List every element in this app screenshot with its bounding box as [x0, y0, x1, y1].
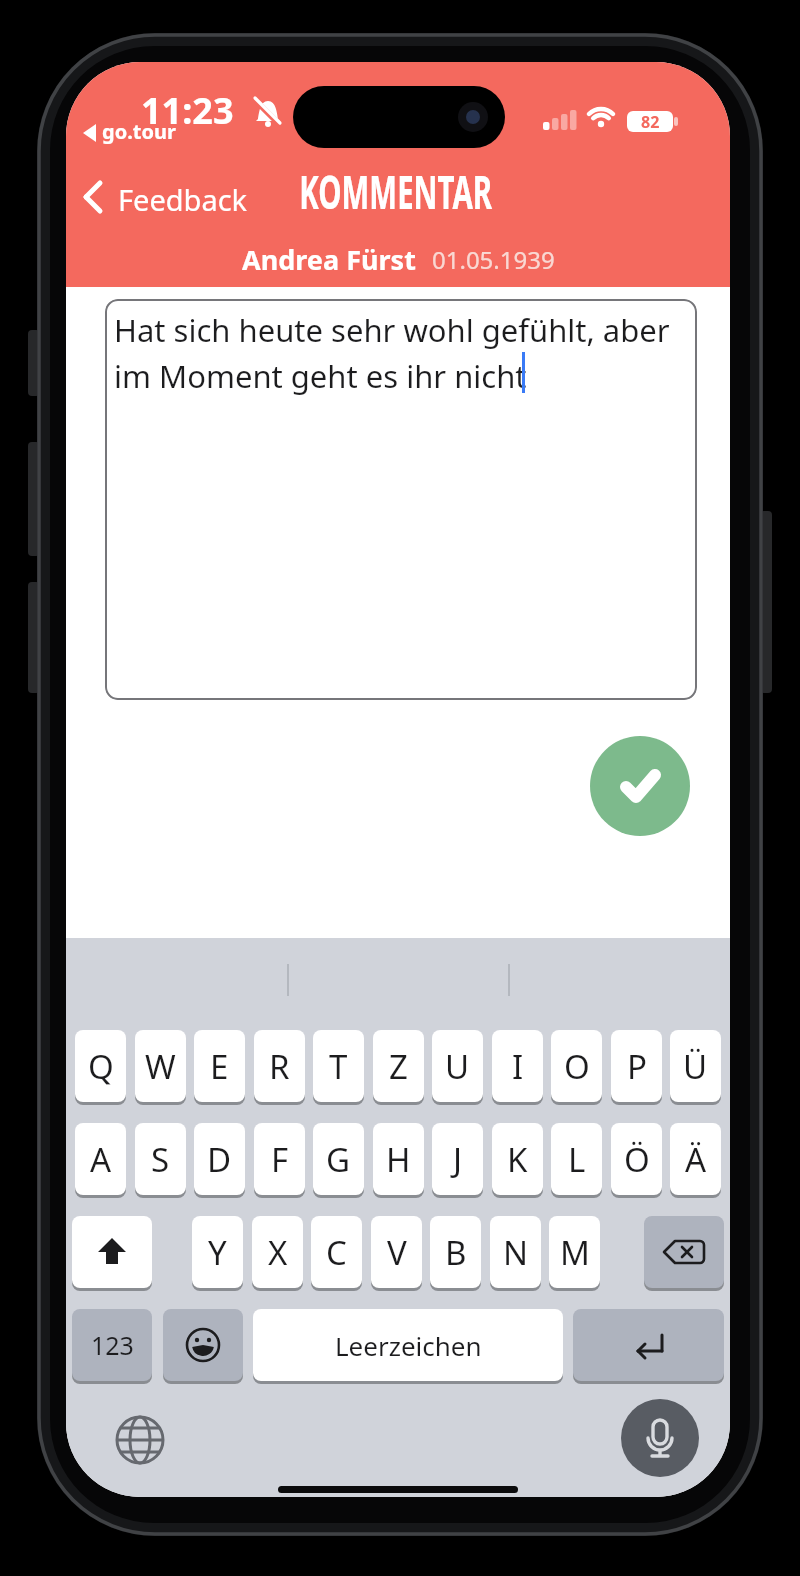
button[interactable]: R [254, 1030, 305, 1102]
staticText: H [386, 1137, 411, 1182]
button[interactable]: G [313, 1123, 364, 1195]
button[interactable] [76, 172, 256, 222]
staticText: C [326, 1230, 347, 1275]
staticText: V [387, 1230, 407, 1275]
button[interactable]: A [75, 1123, 126, 1195]
staticText: Z [389, 1044, 408, 1089]
button[interactable]: 123 [72, 1309, 152, 1381]
staticText: B [445, 1230, 467, 1275]
button[interactable]: Ü [670, 1030, 721, 1102]
staticText: M [560, 1230, 590, 1275]
button[interactable] [621, 1399, 699, 1477]
staticText: I [512, 1044, 524, 1089]
staticText: A [90, 1137, 112, 1182]
staticText: T [329, 1044, 348, 1089]
staticText: J [453, 1137, 463, 1182]
button[interactable] [72, 1216, 152, 1288]
staticText: F [271, 1137, 289, 1182]
staticText: Ü [683, 1044, 708, 1089]
staticText: Andrea Fürst [242, 241, 416, 278]
staticText: L [568, 1137, 586, 1182]
staticText: 82 [641, 111, 660, 132]
button[interactable]: B [430, 1216, 481, 1288]
button[interactable] [573, 1309, 724, 1381]
button[interactable]: Hat sich heute sehr wohl gefühlt, aber i… [105, 299, 697, 700]
staticText: 01.05.1939 [432, 243, 555, 276]
button[interactable]: H [373, 1123, 424, 1195]
button[interactable]: L [551, 1123, 602, 1195]
button[interactable]: O [551, 1030, 602, 1102]
staticText: D [207, 1137, 232, 1182]
staticText: N [503, 1230, 529, 1275]
staticText: 11:23 [141, 86, 234, 135]
staticText: KOMMENTAR [299, 160, 493, 223]
staticText: Leerzeichen [335, 1328, 482, 1363]
button[interactable]: X [252, 1216, 303, 1288]
button[interactable] [590, 736, 690, 836]
button[interactable]: U [432, 1030, 483, 1102]
button[interactable]: Ö [611, 1123, 662, 1195]
button[interactable]: Leerzeichen [253, 1309, 563, 1381]
button[interactable]: Ä [670, 1123, 721, 1195]
staticText: P [627, 1044, 647, 1089]
button[interactable]: E [194, 1030, 245, 1102]
staticText: Y [208, 1230, 227, 1275]
staticText: X [268, 1230, 288, 1275]
button[interactable]: S [135, 1123, 186, 1195]
button[interactable]: D [194, 1123, 245, 1195]
staticText: Q [88, 1044, 114, 1089]
staticText: S [151, 1137, 170, 1182]
button[interactable]: V [371, 1216, 422, 1288]
staticText: E [210, 1044, 229, 1089]
staticText: Hat sich heute sehr wohl gefühlt, aber i… [114, 309, 670, 397]
button[interactable] [644, 1216, 724, 1288]
button[interactable]: W [135, 1030, 186, 1102]
button[interactable]: M [549, 1216, 600, 1288]
staticText: O [564, 1044, 590, 1089]
staticText: G [326, 1137, 351, 1182]
staticText: Ö [624, 1137, 650, 1182]
staticText: W [145, 1044, 176, 1089]
staticText: U [445, 1044, 470, 1089]
button[interactable]: P [611, 1030, 662, 1102]
button[interactable]: K [492, 1123, 543, 1195]
button[interactable]: I [492, 1030, 543, 1102]
staticText: 123 [91, 1328, 134, 1362]
button[interactable]: C [311, 1216, 362, 1288]
staticText: K [507, 1137, 528, 1182]
staticText: go.tour [102, 118, 176, 145]
button[interactable]: F [254, 1123, 305, 1195]
button[interactable] [114, 1414, 166, 1466]
button[interactable]: Z [373, 1030, 424, 1102]
staticText: Feedback [118, 180, 248, 219]
button[interactable]: Q [75, 1030, 126, 1102]
button[interactable]: T [313, 1030, 364, 1102]
staticText: Ä [685, 1137, 707, 1182]
button[interactable] [163, 1309, 243, 1381]
button[interactable]: J [432, 1123, 483, 1195]
staticText: R [269, 1044, 290, 1089]
button[interactable]: Y [192, 1216, 243, 1288]
button[interactable]: N [490, 1216, 541, 1288]
